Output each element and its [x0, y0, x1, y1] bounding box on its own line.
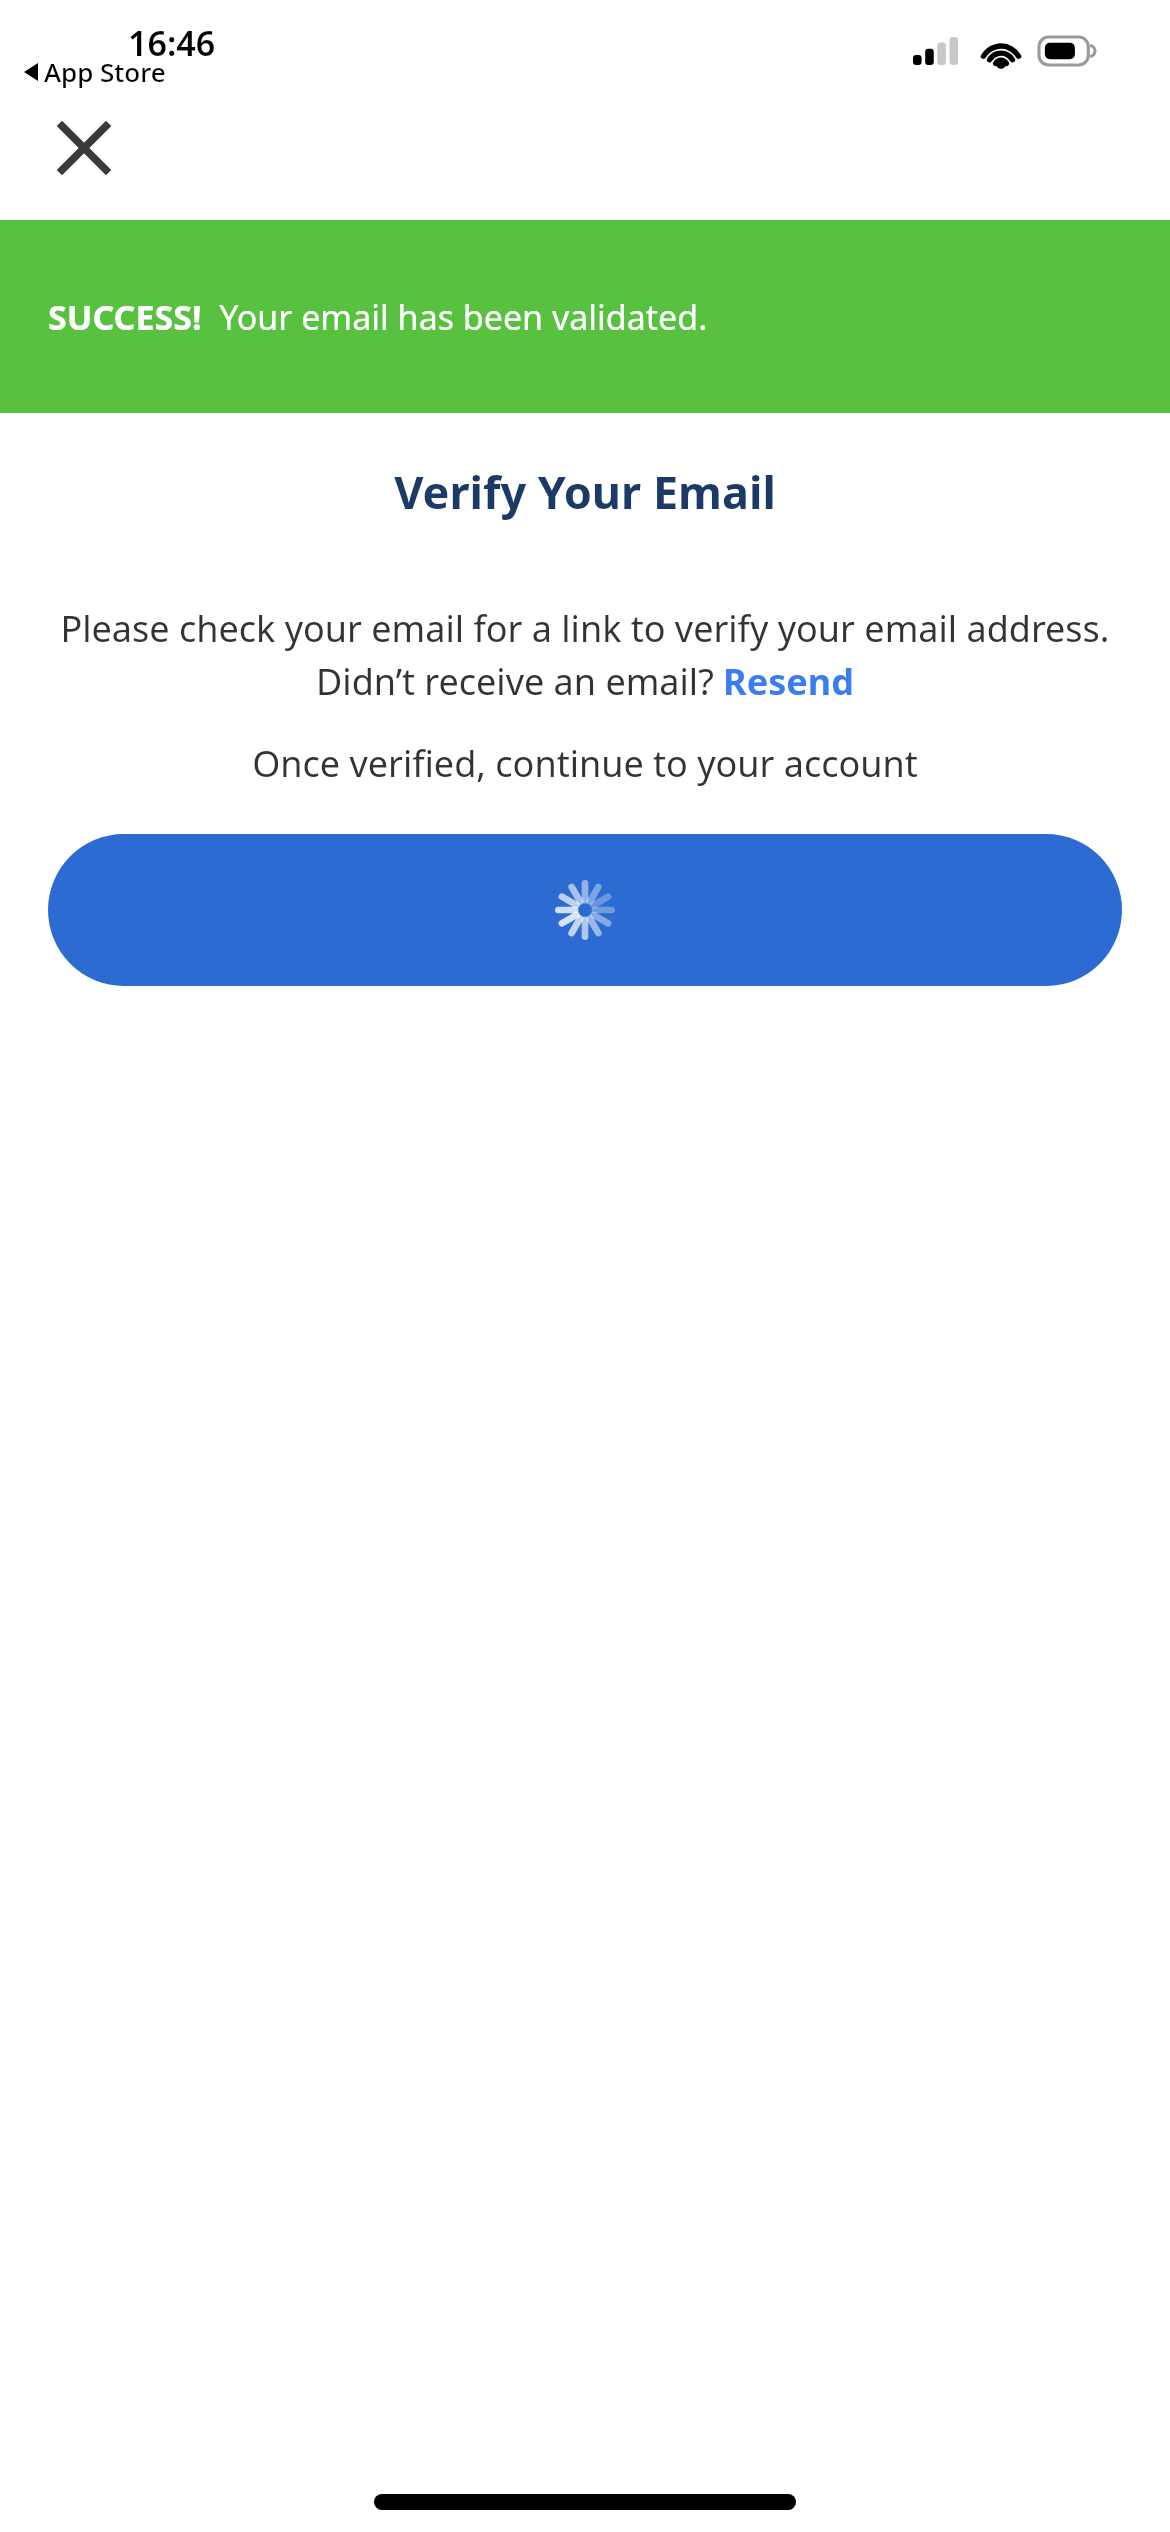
button[interactable]: Please check your email for a link to ve… — [36, 604, 1134, 705]
staticText: SUCCESS! Your email has been validated. — [48, 294, 708, 340]
button[interactable]: Close — [36, 100, 132, 196]
staticText: Once verified, continue to your account — [24, 739, 1146, 788]
button[interactable]: App Store — [22, 52, 168, 91]
staticText: Verify Your Email — [0, 461, 1170, 522]
button[interactable]: Continue, loading — [48, 834, 1122, 986]
staticText: App Store — [44, 54, 166, 89]
staticText: 16:46 — [128, 20, 216, 66]
